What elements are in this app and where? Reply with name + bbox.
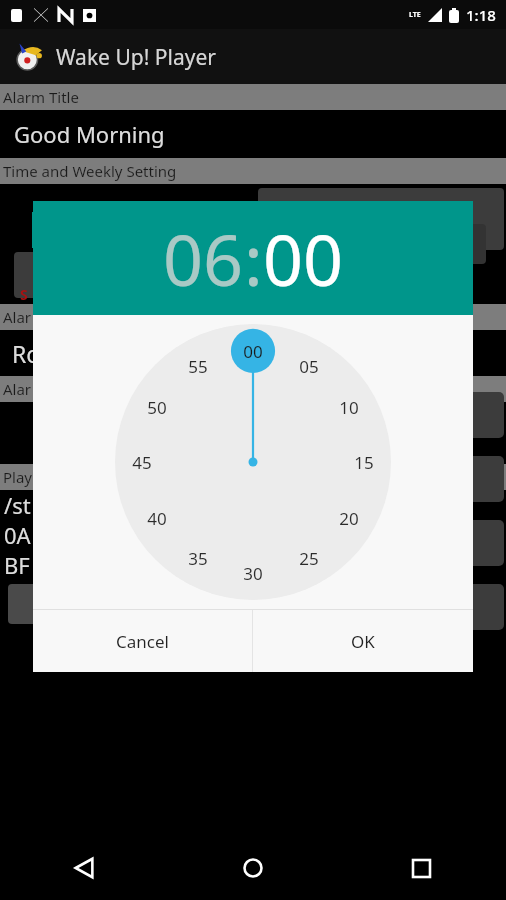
staticText: 55 bbox=[188, 355, 208, 378]
button[interactable]: Back bbox=[0, 836, 168, 900]
staticText: /st bbox=[4, 490, 31, 520]
button[interactable] bbox=[14, 252, 60, 298]
button[interactable]: 06 bbox=[163, 211, 244, 306]
button[interactable]: Select hour bbox=[33, 201, 473, 315]
button[interactable]: 50 bbox=[137, 387, 177, 427]
staticText: Alar bbox=[3, 307, 32, 327]
staticText: 40 bbox=[147, 507, 167, 530]
button[interactable]: OK bbox=[253, 610, 473, 672]
button[interactable]: 00 bbox=[263, 211, 344, 306]
staticText: Cancel bbox=[116, 630, 169, 653]
button[interactable]: 25 bbox=[289, 538, 329, 578]
staticText: Time and Weekly Setting bbox=[3, 161, 177, 181]
staticText: 25 bbox=[299, 547, 319, 570]
button[interactable]: Recent apps bbox=[337, 836, 506, 900]
staticText: 0A bbox=[4, 520, 31, 550]
button[interactable]: 15 bbox=[344, 442, 384, 482]
staticText: : bbox=[244, 211, 263, 306]
button[interactable]: 45 bbox=[122, 442, 162, 482]
staticText: 1:18 bbox=[466, 5, 496, 25]
staticText: 20 bbox=[339, 507, 359, 530]
staticText: 35 bbox=[188, 547, 208, 570]
button[interactable] bbox=[444, 392, 504, 438]
staticText: Alar bbox=[3, 379, 32, 399]
staticText: Wake Up! Player bbox=[56, 43, 216, 72]
button[interactable]: 20 bbox=[329, 498, 369, 538]
button[interactable]: 10 bbox=[329, 387, 369, 427]
button[interactable]: 35 bbox=[178, 538, 218, 578]
staticText: Ro bbox=[12, 338, 41, 369]
button[interactable]: 05 bbox=[289, 346, 329, 386]
staticText: S bbox=[20, 285, 28, 304]
button[interactable]: 30 bbox=[233, 553, 273, 593]
button[interactable]: Home bbox=[168, 836, 337, 900]
staticText: 05 bbox=[299, 355, 319, 378]
staticText: Play bbox=[3, 467, 33, 487]
button[interactable] bbox=[444, 456, 504, 502]
button[interactable]: 00 bbox=[233, 331, 273, 371]
button[interactable]: Cancel bbox=[33, 610, 252, 672]
staticText: BF bbox=[4, 550, 30, 580]
button[interactable] bbox=[444, 584, 504, 630]
button[interactable]: 55 bbox=[178, 346, 218, 386]
staticText: 00 bbox=[243, 340, 263, 363]
button[interactable] bbox=[258, 188, 504, 250]
staticText: 30 bbox=[243, 562, 263, 585]
staticText: 10 bbox=[339, 396, 359, 419]
staticText: LTE bbox=[409, 10, 421, 20]
staticText: OK bbox=[351, 630, 375, 653]
button[interactable] bbox=[444, 520, 504, 566]
staticText: 45 bbox=[132, 451, 152, 474]
staticText: 15 bbox=[354, 451, 374, 474]
staticText: 50 bbox=[147, 396, 167, 419]
button[interactable] bbox=[8, 584, 54, 624]
staticText: Good Morning bbox=[14, 119, 165, 149]
button[interactable]: 40 bbox=[137, 498, 177, 538]
staticText: Alarm Title bbox=[3, 87, 79, 107]
